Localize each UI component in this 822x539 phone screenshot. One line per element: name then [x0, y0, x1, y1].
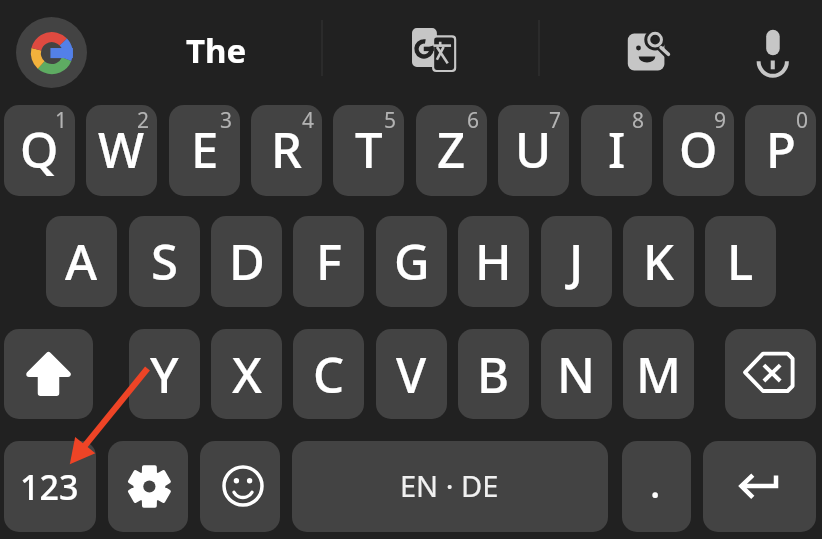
staticText: Z: [437, 116, 466, 183]
button[interactable]: G: [376, 216, 447, 307]
staticText: T: [355, 116, 383, 183]
button[interactable]: C: [293, 329, 364, 419]
button[interactable]: 123: [4, 441, 96, 532]
button[interactable]: Z: [416, 105, 487, 196]
button[interactable]: D: [211, 216, 282, 307]
button[interactable]: O: [663, 105, 734, 196]
button[interactable]: F: [293, 216, 364, 307]
staticText: 1: [55, 106, 68, 135]
button[interactable]: H: [458, 216, 529, 307]
staticText: D: [229, 228, 265, 295]
button[interactable]: Backspace: [725, 329, 816, 419]
staticText: X: [232, 341, 262, 408]
staticText: 8: [632, 106, 645, 135]
button[interactable]: .: [622, 441, 691, 532]
staticText: E: [191, 116, 219, 183]
staticText: .: [650, 457, 661, 509]
staticText: V: [396, 341, 427, 408]
button[interactable]: Search stickers: [612, 12, 684, 84]
staticText: H: [475, 228, 512, 295]
button[interactable]: Q: [4, 105, 75, 196]
staticText: The: [186, 28, 247, 73]
staticText: N: [557, 341, 596, 408]
button[interactable]: P: [745, 105, 816, 196]
button[interactable]: Voice input: [737, 12, 809, 84]
staticText: 0: [796, 106, 809, 135]
staticText: F: [316, 228, 342, 295]
staticText: Y: [150, 341, 179, 408]
staticText: 9: [714, 106, 727, 135]
staticText: K: [643, 228, 674, 295]
button[interactable]: T: [333, 105, 404, 196]
staticText: I: [608, 116, 626, 183]
button[interactable]: U: [498, 105, 569, 196]
staticText: 6: [467, 106, 480, 135]
staticText: L: [727, 228, 754, 295]
button[interactable]: Settings: [108, 441, 188, 532]
button[interactable]: N: [541, 329, 612, 419]
button[interactable]: Google Search: [16, 17, 87, 88]
button[interactable]: B: [458, 329, 529, 419]
button[interactable]: I: [581, 105, 652, 196]
staticText: EN · DE: [400, 466, 499, 505]
staticText: S: [151, 228, 178, 295]
button[interactable]: E: [169, 105, 240, 196]
staticText: W: [98, 116, 145, 183]
button[interactable]: Space: [292, 441, 608, 532]
button[interactable]: Emoji: [200, 441, 280, 532]
button[interactable]: A: [46, 216, 117, 307]
button[interactable]: M: [623, 329, 694, 419]
staticText: G: [394, 228, 430, 295]
button[interactable]: W: [86, 105, 157, 196]
button[interactable]: K: [623, 216, 694, 307]
button[interactable]: The: [106, 2, 326, 98]
button[interactable]: Enter: [703, 441, 816, 532]
staticText: 2: [137, 106, 150, 135]
button[interactable]: X: [211, 329, 282, 419]
staticText: R: [271, 116, 302, 183]
staticText: O: [679, 116, 718, 183]
staticText: 3: [220, 106, 233, 135]
staticText: U: [515, 116, 552, 183]
staticText: P: [766, 116, 796, 183]
button[interactable]: R: [251, 105, 322, 196]
button[interactable]: J: [541, 216, 612, 307]
staticText: Q: [20, 116, 59, 183]
staticText: B: [477, 341, 510, 408]
staticText: J: [569, 228, 584, 295]
button[interactable]: Y: [129, 329, 200, 419]
staticText: M: [636, 341, 681, 408]
staticText: 4: [302, 106, 315, 135]
staticText: 5: [384, 106, 397, 135]
button[interactable]: Shift: [4, 329, 93, 419]
button[interactable]: V: [376, 329, 447, 419]
button[interactable]: Translate: [398, 12, 470, 84]
staticText: 123: [20, 464, 79, 510]
button[interactable]: L: [705, 216, 776, 307]
staticText: A: [65, 228, 98, 295]
staticText: 7: [549, 106, 562, 135]
staticText: C: [313, 341, 345, 408]
button[interactable]: S: [129, 216, 200, 307]
